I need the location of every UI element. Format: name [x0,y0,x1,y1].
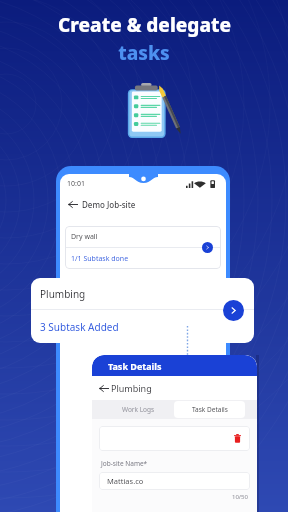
staticText: 1/1 Subtask done [71,254,129,264]
staticText: Mattias.co [107,476,144,486]
staticText: tasks [118,40,170,66]
staticText: Create & delegate [58,12,231,38]
other: Back [68,200,78,209]
button[interactable]: Back [68,193,219,215]
button[interactable]: Open Plumbing [223,300,244,321]
button[interactable]: Work Logs [103,401,174,418]
button[interactable]: Dry wall [65,226,221,269]
staticText: Demo Job-site [82,199,136,210]
button[interactable]: Delete [234,434,241,443]
staticText: Task Details [192,405,228,414]
button[interactable]: Plumbing [31,278,254,343]
staticText: 10:01 [67,179,85,189]
staticText: Plumbing [40,287,86,301]
staticText: Dry wall [71,232,98,242]
staticText: 10/50 [232,493,248,501]
staticText: 3 Subtask Added [40,320,119,334]
staticText: Plumbing [111,382,152,394]
staticText: Task Details [108,360,162,372]
staticText: Job-site Name* [101,459,148,468]
staticText: Work Logs [122,405,155,414]
button[interactable]: Open Dry wall [202,242,213,253]
button[interactable]: Task Details [174,401,245,418]
other: Back [99,384,109,393]
button[interactable]: Back [99,376,257,400]
